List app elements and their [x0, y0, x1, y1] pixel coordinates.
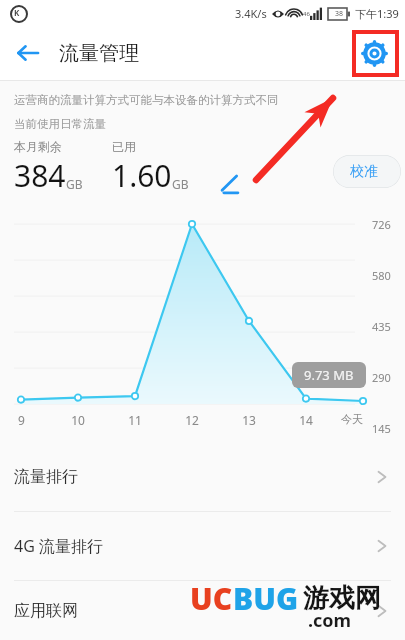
staticText: 流量管理: [59, 41, 139, 66]
staticText: 运营商的流量计算方式可能与本设备的计算方式不同: [14, 93, 279, 107]
staticText: 9.73 MB: [304, 366, 354, 384]
staticText: GB: [66, 176, 83, 192]
staticText: 今天: [341, 412, 363, 426]
staticText: 726: [372, 217, 391, 232]
staticText: 290: [372, 370, 391, 385]
staticText: 435: [372, 319, 391, 334]
staticText: 13: [242, 412, 256, 428]
staticText: 384: [14, 155, 66, 196]
staticText: 46: [303, 10, 310, 18]
staticText: .com: [308, 608, 352, 633]
staticText: 38: [335, 9, 344, 19]
staticText: 下午1:39: [355, 6, 399, 21]
staticText: 12: [185, 412, 199, 428]
staticText: 校准: [350, 163, 378, 181]
staticText: 11: [128, 412, 142, 428]
staticText: 10: [71, 412, 85, 428]
staticText: 14: [299, 412, 313, 428]
staticText: 流量排行: [14, 467, 78, 487]
staticText: 已用: [112, 139, 136, 154]
staticText: 当前使用日常流量: [14, 117, 106, 131]
staticText: 1.60: [112, 155, 172, 196]
staticText: 本月剩余: [14, 139, 62, 154]
button[interactable]: Edit: [213, 167, 247, 201]
staticText: UC: [190, 578, 233, 619]
staticText: 0: [372, 472, 379, 487]
staticText: 应用联网: [14, 601, 78, 621]
button[interactable]: Settings: [353, 32, 395, 74]
button[interactable]: Back: [8, 33, 48, 73]
button[interactable]: 应用联网: [0, 581, 405, 640]
button[interactable]: 流量排行: [0, 443, 405, 511]
staticText: 3.4K/s: [235, 6, 267, 21]
staticText: 游戏网: [303, 582, 381, 615]
staticText: 145: [372, 421, 391, 436]
staticText: 4G 流量排行: [14, 535, 103, 557]
button[interactable]: 4G 流量排行: [0, 512, 405, 580]
button[interactable]: 校准: [333, 155, 401, 188]
staticText: GB: [172, 176, 189, 192]
staticText: BUG: [233, 578, 299, 619]
staticText: K: [14, 7, 20, 18]
staticText: 9: [18, 412, 25, 428]
staticText: 580: [372, 268, 391, 283]
